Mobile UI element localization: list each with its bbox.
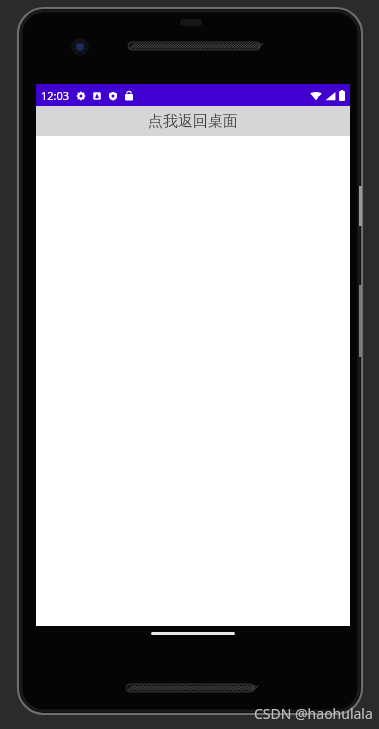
staticText: 12:03: [41, 88, 70, 103]
button[interactable]: 点我返回桌面: [36, 106, 350, 136]
staticText: 点我返回桌面: [148, 112, 238, 131]
staticText: CSDN @haohulala: [254, 704, 373, 723]
